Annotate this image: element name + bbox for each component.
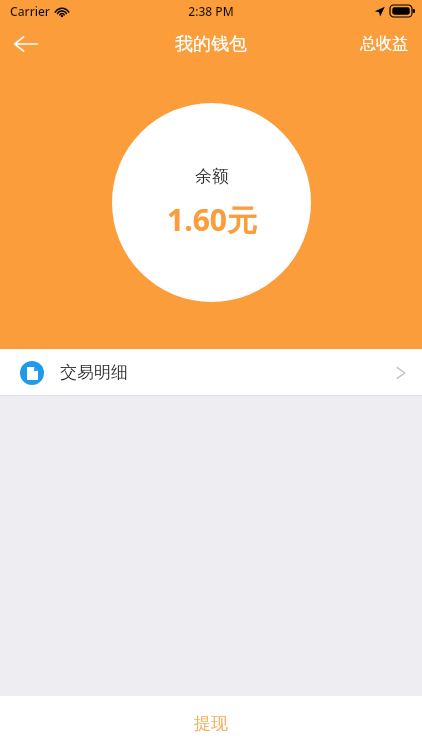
staticText: 2:38 PM [188, 3, 234, 19]
staticText: 总收益 [360, 34, 408, 54]
staticText: 提现 [194, 713, 228, 734]
staticText: 交易明细 [60, 362, 128, 383]
staticText: 余额 [195, 166, 229, 187]
staticText: 我的钱包 [175, 33, 247, 56]
button[interactable]: 总收益 [346, 22, 422, 66]
staticText: 1.60元 [167, 199, 257, 240]
button[interactable]: Back [0, 22, 52, 66]
button[interactable]: 提现 [0, 696, 422, 750]
button[interactable]: 交易明细 [0, 349, 422, 396]
staticText: Carrier [10, 3, 50, 19]
